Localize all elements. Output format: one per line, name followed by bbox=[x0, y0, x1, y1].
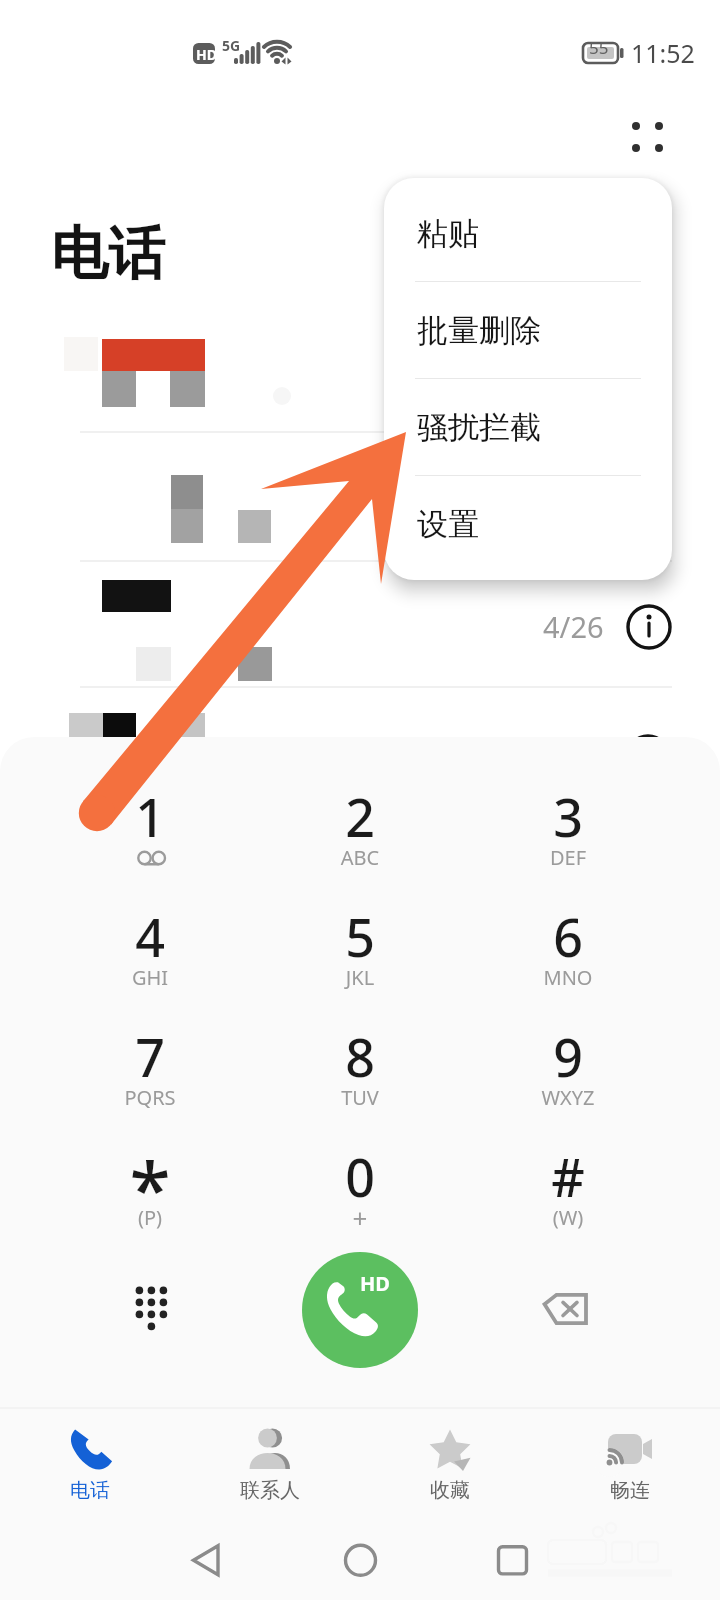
staticText: ABC bbox=[260, 844, 460, 871]
button[interactable] bbox=[70, 777, 230, 885]
button[interactable]: Call bbox=[302, 1252, 418, 1368]
button[interactable] bbox=[280, 897, 440, 1005]
button[interactable] bbox=[488, 1137, 648, 1245]
staticText: 畅连 bbox=[530, 1478, 720, 1503]
staticText: TUV bbox=[260, 1084, 460, 1111]
staticText: 骚扰拦截 bbox=[417, 408, 541, 447]
staticText: 8 bbox=[260, 1021, 460, 1092]
button[interactable]: 粘贴 bbox=[384, 185, 672, 282]
staticText: 4 bbox=[50, 901, 250, 972]
button[interactable] bbox=[488, 1017, 648, 1125]
button[interactable]: 设置 bbox=[384, 476, 672, 573]
staticText: (W) bbox=[468, 1204, 668, 1231]
button[interactable] bbox=[540, 1412, 720, 1508]
staticText: 4/26 bbox=[543, 607, 604, 646]
staticText: HD bbox=[360, 1270, 390, 1297]
button[interactable]: 批量删除 bbox=[384, 282, 672, 379]
staticText: JKL bbox=[260, 964, 460, 991]
staticText: 11:52 bbox=[631, 36, 695, 70]
staticText: + bbox=[260, 1200, 460, 1235]
button[interactable]: Info bbox=[626, 604, 672, 650]
staticText: PQRS bbox=[50, 1084, 250, 1111]
button[interactable] bbox=[488, 897, 648, 1005]
staticText: # bbox=[468, 1141, 668, 1212]
staticText: 粘贴 bbox=[417, 214, 479, 253]
button[interactable] bbox=[488, 777, 648, 885]
staticText: 电话 bbox=[0, 1478, 190, 1503]
staticText: 6 bbox=[468, 901, 668, 972]
staticText: 批量删除 bbox=[417, 311, 541, 350]
staticText: 联系人 bbox=[170, 1478, 370, 1503]
staticText: * bbox=[50, 1137, 250, 1239]
button[interactable] bbox=[0, 1412, 180, 1508]
staticText: 电话 bbox=[51, 218, 165, 290]
button[interactable] bbox=[70, 1137, 230, 1245]
staticText: 1 bbox=[50, 781, 250, 852]
button[interactable] bbox=[70, 1017, 230, 1125]
staticText: 9 bbox=[468, 1021, 668, 1092]
button[interactable] bbox=[70, 897, 230, 1005]
staticText: 7 bbox=[50, 1021, 250, 1092]
staticText: DEF bbox=[468, 844, 668, 871]
button[interactable]: More options bbox=[612, 102, 684, 174]
staticText: 设置 bbox=[417, 505, 479, 544]
button[interactable] bbox=[180, 1412, 360, 1508]
button[interactable] bbox=[280, 777, 440, 885]
staticText: 3 bbox=[468, 781, 668, 852]
button[interactable]: Hide keypad bbox=[117, 1275, 185, 1333]
button[interactable] bbox=[280, 1137, 440, 1245]
staticText: (P) bbox=[50, 1204, 250, 1231]
staticText: 55 bbox=[589, 36, 609, 59]
button[interactable]: Backspace bbox=[540, 1290, 596, 1334]
staticText: 收藏 bbox=[350, 1478, 550, 1503]
staticText: 0 bbox=[260, 1141, 460, 1212]
button[interactable] bbox=[360, 1412, 540, 1508]
staticText: HD bbox=[196, 45, 217, 64]
staticText: 5 bbox=[260, 901, 460, 972]
staticText: WXYZ bbox=[468, 1084, 668, 1111]
staticText: 5G bbox=[222, 36, 241, 55]
staticText: GHI bbox=[50, 964, 250, 991]
button[interactable] bbox=[280, 1017, 440, 1125]
button[interactable]: 骚扰拦截 bbox=[384, 379, 672, 476]
staticText: 2 bbox=[260, 781, 460, 852]
staticText: MNO bbox=[468, 964, 668, 991]
